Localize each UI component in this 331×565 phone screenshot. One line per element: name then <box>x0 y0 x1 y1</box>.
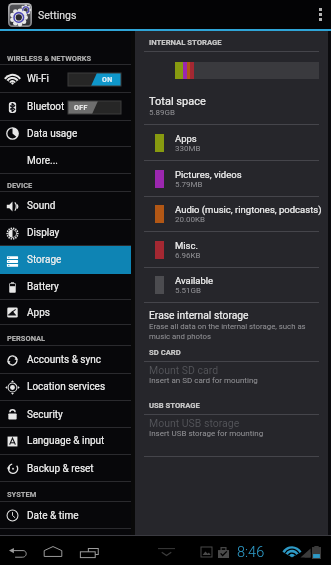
staticText: Language & input <box>27 435 105 447</box>
staticText: Wi-Fi <box>27 73 50 85</box>
button[interactable]: Sound <box>0 192 131 220</box>
button[interactable]: Pictures, videos <box>135 161 328 196</box>
staticText: Audio (music, ringtones, podcasts) <box>175 204 322 215</box>
staticText: USB STORAGE <box>149 401 200 410</box>
staticText: Location services <box>27 381 106 393</box>
button[interactable]: Available <box>135 267 328 302</box>
button[interactable]: Mount USB storage <box>135 417 328 438</box>
button[interactable]: Display <box>0 220 131 246</box>
staticText: 5.51GB <box>175 286 202 295</box>
staticText: Erase all data on the internal storage, … <box>149 322 306 341</box>
button[interactable]: Wi-Fi on <box>68 73 121 86</box>
button[interactable]: Backup & reset <box>0 455 131 482</box>
staticText: Insert an SD card for mounting <box>149 376 258 385</box>
staticText: 20.00KB <box>175 215 206 224</box>
staticText: More... <box>27 155 58 167</box>
button[interactable]: More options <box>309 0 331 29</box>
button[interactable]: Bluetooth <box>0 93 131 121</box>
button[interactable]: Location services <box>0 373 131 401</box>
staticText: Accounts & sync <box>27 354 101 366</box>
staticText: Display <box>27 227 60 239</box>
button[interactable]: Apps <box>135 125 328 160</box>
staticText: 5.79MB <box>175 180 203 189</box>
staticText: ON <box>102 76 113 84</box>
button[interactable]: Wi-Fi <box>0 65 131 93</box>
staticText: OFF <box>74 104 88 112</box>
staticText: Apps <box>27 307 50 319</box>
staticText: 8:46 <box>237 544 265 561</box>
button[interactable]: More... <box>0 147 131 174</box>
staticText: Bluetooth <box>27 101 64 113</box>
staticText: Data usage <box>27 128 78 140</box>
button[interactable]: Bluetooth off <box>68 101 121 114</box>
staticText: Backup & reset <box>27 463 94 475</box>
staticText: Storage <box>27 254 62 266</box>
staticText: Sound <box>27 200 56 212</box>
staticText: Apps <box>175 133 197 144</box>
staticText: Available <box>175 275 214 286</box>
staticText: Mount USB storage <box>149 417 240 429</box>
button[interactable]: Accessibility <box>0 528 131 555</box>
staticText: Insert USB storage for mounting <box>149 429 264 438</box>
button[interactable]: Data usage <box>0 120 131 147</box>
button[interactable]: Battery <box>0 274 131 300</box>
button[interactable]: Accounts & sync <box>0 346 131 374</box>
staticText: PERSONAL <box>7 334 46 343</box>
button[interactable]: Security <box>0 401 131 428</box>
staticText: Security <box>27 409 63 421</box>
staticText: 5.89GB <box>149 108 176 117</box>
button[interactable]: Total space <box>135 95 328 117</box>
staticText: INTERNAL STORAGE <box>149 38 222 47</box>
button[interactable]: Audio (music, ringtones, podcasts) <box>135 196 328 231</box>
staticText: WIRELESS & NETWORKS <box>7 54 92 63</box>
staticText: Mount SD card <box>149 364 219 376</box>
button[interactable]: Back <box>3 542 33 563</box>
staticText: 6.96KB <box>175 251 201 260</box>
staticText: Misc. <box>175 240 198 251</box>
staticText: Total space <box>149 95 206 108</box>
staticText: Battery <box>27 281 59 293</box>
button[interactable]: Misc. <box>135 232 328 267</box>
button[interactable]: Home <box>38 541 68 562</box>
staticText: Accessibility <box>27 536 83 548</box>
button[interactable]: Language & input <box>0 427 131 455</box>
button[interactable]: Date & time <box>0 502 131 529</box>
staticText: SYSTEM <box>7 490 37 499</box>
staticText: SD CARD <box>149 348 181 357</box>
staticText: DEVICE <box>7 181 33 190</box>
button[interactable]: Mount SD card <box>135 364 328 385</box>
button[interactable]: Recent apps <box>74 542 104 563</box>
staticText: Erase internal storage <box>149 309 249 321</box>
button[interactable]: Hide navigation <box>152 541 180 562</box>
button[interactable]: Storage <box>0 246 131 274</box>
staticText: Pictures, videos <box>175 169 242 180</box>
button[interactable]: Erase internal storage <box>135 304 328 346</box>
staticText: 330MB <box>175 144 201 153</box>
staticText: Settings <box>38 9 77 21</box>
button[interactable]: Apps <box>0 300 131 325</box>
staticText: Date & time <box>27 510 79 522</box>
